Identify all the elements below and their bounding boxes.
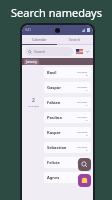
button[interactable]: Sebastian	[44, 142, 91, 153]
button[interactable]: Felicia	[44, 157, 91, 168]
staticText: Search	[34, 49, 46, 54]
button[interactable]: Paulina	[44, 112, 91, 123]
staticText: Felicia	[47, 160, 60, 165]
button[interactable]: Kaspar	[44, 127, 91, 138]
staticText: Agnes	[47, 175, 60, 180]
staticText: 0	[86, 148, 88, 151]
staticText: 2	[32, 97, 35, 104]
staticText: Contacts	[77, 175, 88, 178]
staticText: 0	[86, 118, 88, 121]
button[interactable]: More	[85, 49, 90, 54]
staticText: Basil	[47, 70, 57, 75]
staticText: Contacts	[77, 85, 88, 88]
staticText: Fabian	[47, 100, 61, 105]
button[interactable]: Calendar	[22, 35, 57, 44]
staticText: Search namedays	[11, 5, 102, 20]
staticText: Gaspar	[47, 85, 62, 90]
staticText: Contacts	[77, 145, 88, 148]
staticText: 0	[86, 103, 88, 106]
button[interactable]: Search	[57, 35, 93, 44]
button[interactable]: Basil	[44, 67, 91, 78]
staticText: Paulina	[47, 115, 62, 120]
staticText: Contacts	[77, 70, 88, 73]
staticText: Sebastian	[47, 145, 67, 150]
staticText: Contacts	[77, 100, 88, 103]
staticText: January	[26, 60, 37, 64]
button[interactable]: January	[22, 58, 93, 65]
staticText: Calendar	[32, 37, 47, 42]
button[interactable]: Fabian	[44, 97, 91, 108]
staticText: Search	[69, 37, 81, 42]
button[interactable]: Language	[76, 49, 83, 54]
staticText: 0	[86, 73, 88, 76]
staticText: Contacts	[77, 130, 88, 133]
staticText: Contacts	[77, 115, 88, 118]
staticText: 0	[86, 163, 88, 166]
staticText: 9:41	[25, 28, 31, 32]
button[interactable]: Gaspar	[44, 82, 91, 93]
button[interactable]: Add nameday	[78, 174, 91, 187]
staticText: 0	[86, 133, 88, 136]
button[interactable]: Agnes	[44, 172, 91, 183]
button[interactable]: Search	[78, 158, 91, 171]
staticText: Contacts	[77, 160, 88, 163]
staticText: 0	[86, 178, 88, 181]
staticText: Thursday	[28, 104, 39, 107]
staticText: 0	[86, 88, 88, 91]
staticText: Kaspar	[47, 130, 61, 135]
button[interactable]: Search	[25, 47, 73, 56]
